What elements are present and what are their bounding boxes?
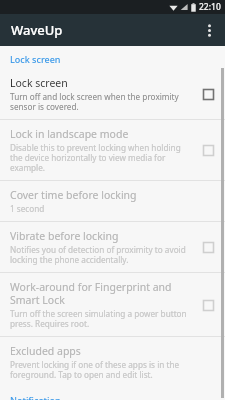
staticText: Notifies you of detection of proximity t… — [10, 244, 191, 265]
staticText: 22:10 — [199, 1, 221, 13]
staticText: Turn off the screen simulating a power b… — [10, 308, 191, 329]
staticText: Lock in landscape mode — [10, 127, 129, 141]
button[interactable]: Work-around for Fingerprint and Smart Lo… — [0, 273, 225, 336]
staticText: Turn off and lock screen when the proxim… — [10, 91, 191, 112]
button[interactable]: Cover time before locking — [0, 181, 225, 221]
staticText: Excluded apps — [10, 344, 81, 358]
staticText: Lock screen — [10, 76, 68, 90]
button[interactable]: Lock in landscape mode — [197, 139, 219, 161]
button[interactable]: Lock in landscape mode — [0, 120, 225, 180]
button[interactable]: Lock screen — [197, 83, 219, 105]
button[interactable]: Lock screen — [0, 69, 225, 119]
staticText: 1 second — [10, 203, 45, 214]
staticText: Lock screen — [10, 53, 61, 65]
staticText: Cover time before locking — [10, 188, 137, 202]
staticText: Prevent locking if one of these apps is … — [10, 359, 197, 380]
button[interactable]: Vibrate before locking — [197, 236, 219, 258]
staticText: Vibrate before locking — [10, 229, 119, 243]
staticText: Disable this to prevent locking when hol… — [10, 142, 191, 173]
staticText: WaveUp — [11, 21, 63, 39]
staticText: Notification — [10, 394, 61, 400]
button[interactable]: Work-around for Fingerprint and Smart Lo… — [197, 294, 219, 316]
button[interactable]: More options — [193, 14, 225, 46]
button[interactable]: Vibrate before locking — [0, 222, 225, 272]
button[interactable]: Excluded apps — [0, 337, 225, 387]
staticText: Work-around for Fingerprint and Smart Lo… — [10, 280, 191, 307]
